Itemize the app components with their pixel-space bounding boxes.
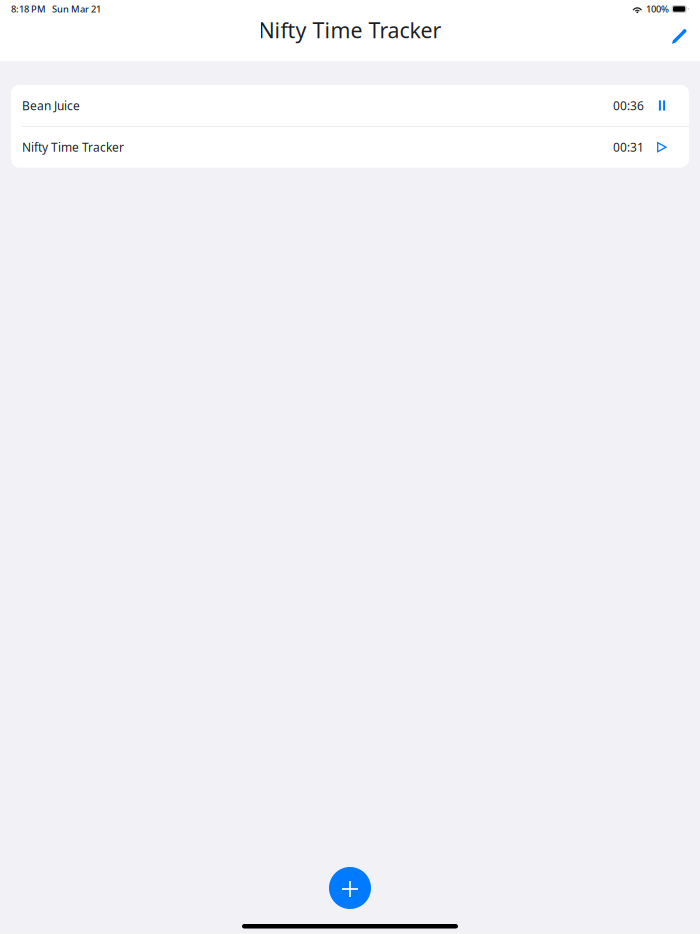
staticText: Nifty Time Tracker (22, 139, 124, 155)
staticText: 00:36 (613, 97, 644, 113)
button[interactable]: Pause Bean Juice (649, 85, 675, 125)
staticText: 100% (646, 3, 669, 15)
staticText: Nifty Time Tracker (258, 16, 441, 44)
button[interactable]: Add timer (323, 867, 377, 909)
button[interactable]: Start Nifty Time Tracker (649, 127, 675, 167)
button[interactable]: Nifty Time Tracker (11, 127, 689, 168)
staticText: 8:18 PM (11, 3, 46, 15)
staticText: 00:31 (613, 139, 644, 155)
staticText: Sun Mar 21 (52, 3, 101, 15)
button[interactable]: Edit (659, 19, 699, 53)
staticText: Bean Juice (22, 97, 80, 113)
button[interactable]: Bean Juice (11, 85, 689, 126)
